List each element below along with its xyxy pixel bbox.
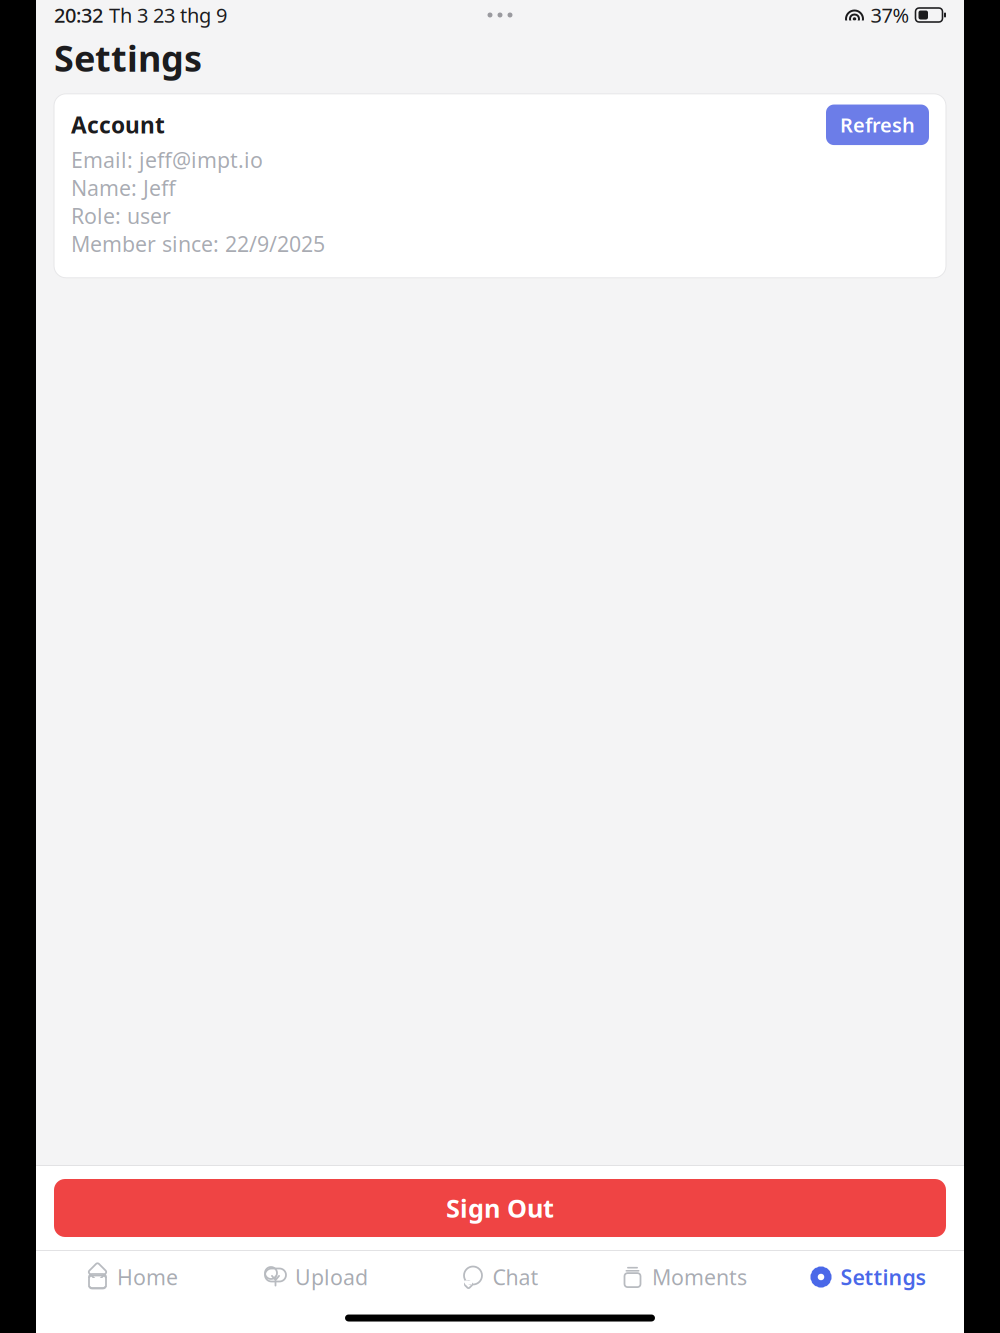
staticText: Member since: 22/9/2025 bbox=[71, 230, 325, 258]
button[interactable]: Settings bbox=[776, 1251, 960, 1303]
staticText: Settings bbox=[840, 1263, 926, 1291]
staticText: Account bbox=[71, 110, 165, 140]
staticText: 37% bbox=[870, 2, 909, 28]
staticText: 20:32 bbox=[54, 2, 103, 28]
staticText: Email: jeff@impt.io bbox=[71, 146, 263, 174]
button[interactable]: Upload bbox=[224, 1251, 408, 1303]
button[interactable]: Home bbox=[40, 1251, 224, 1303]
staticText: Th 3 23 thg 9 bbox=[109, 2, 227, 28]
button[interactable]: Chat bbox=[408, 1251, 592, 1303]
staticText: Sign Out bbox=[446, 1191, 554, 1225]
staticText: Home bbox=[117, 1263, 178, 1291]
button[interactable]: Sign Out bbox=[54, 1179, 946, 1237]
staticText: Chat bbox=[492, 1263, 538, 1291]
staticText: Moments bbox=[652, 1263, 747, 1291]
staticText: Name: Jeff bbox=[71, 174, 176, 202]
button[interactable]: Moments bbox=[592, 1251, 776, 1303]
button[interactable]: Refresh bbox=[826, 104, 929, 145]
staticText: Refresh bbox=[840, 111, 915, 138]
staticText: Role: user bbox=[71, 202, 171, 230]
staticText: Settings bbox=[54, 34, 202, 82]
staticText: Upload bbox=[295, 1263, 368, 1291]
